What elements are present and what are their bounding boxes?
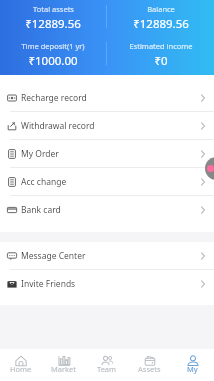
staticText: Assets — [138, 364, 161, 374]
button[interactable]: Acc change — [0, 168, 214, 195]
staticText: Home — [10, 364, 32, 374]
button[interactable]: Withdrawal record — [0, 112, 214, 139]
staticText: ₹12889.56 — [133, 16, 189, 29]
button[interactable]: Message Center — [0, 242, 214, 269]
staticText: Recharge record — [21, 92, 87, 104]
button[interactable]: Team — [85, 353, 128, 379]
button[interactable]: Home — [0, 353, 42, 379]
button[interactable]: Assets — [128, 353, 171, 379]
button[interactable]: Recharge record — [0, 84, 214, 111]
staticText: Time deposit(1 yr) — [21, 41, 85, 51]
button[interactable]: My — [171, 353, 214, 379]
staticText: Balance — [147, 4, 175, 14]
button[interactable]: Customer service — [205, 157, 214, 180]
staticText: ₹1000.00 — [28, 53, 78, 66]
staticText: Bank card — [21, 204, 61, 216]
staticText: My — [187, 364, 198, 374]
button[interactable]: Bank card — [0, 196, 214, 223]
staticText: Team — [97, 364, 117, 374]
staticText: ₹0 — [154, 53, 168, 66]
staticText: Withdrawal record — [21, 120, 95, 132]
staticText: Total assets — [33, 4, 74, 14]
staticText: ₹12889.56 — [25, 16, 81, 29]
staticText: Acc change — [21, 176, 67, 188]
button[interactable]: Invite Friends — [0, 270, 214, 297]
staticText: Message Center — [21, 250, 86, 262]
staticText: My Order — [21, 148, 59, 160]
staticText: Market — [51, 364, 77, 374]
staticText: Invite Friends — [21, 278, 76, 290]
button[interactable]: My Order — [0, 140, 214, 167]
staticText: Estimated income — [129, 41, 193, 51]
button[interactable]: Market — [42, 353, 85, 379]
